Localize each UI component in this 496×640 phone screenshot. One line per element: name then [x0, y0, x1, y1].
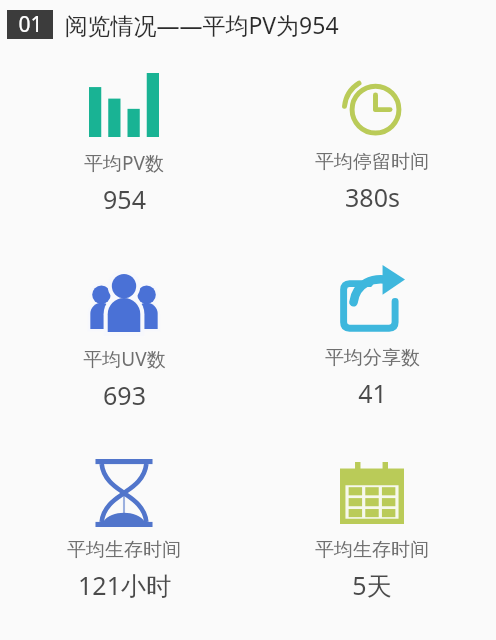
button[interactable]: Average lifetime calendar — [248, 456, 496, 602]
staticText: 平均UV数 — [83, 346, 166, 372]
staticText: 380s — [345, 180, 400, 214]
button[interactable]: Average lifetime hourglass — [0, 456, 248, 602]
staticText: 5天 — [352, 568, 392, 602]
staticText: 01 — [18, 10, 43, 39]
staticText: 954 — [103, 182, 146, 216]
other: Average shares — [335, 264, 409, 338]
other: Average UV people — [87, 264, 161, 338]
staticText: 693 — [103, 378, 146, 412]
other: Average lifetime calendar — [335, 456, 409, 530]
staticText: 平均生存时间 — [315, 538, 429, 562]
staticText: 阅览情况——平均PV为954 — [64, 9, 339, 40]
button[interactable]: Average PV chart — [0, 68, 248, 216]
staticText: 平均PV数 — [84, 150, 164, 176]
button[interactable]: Average shares — [248, 264, 496, 410]
other: Average lifetime hourglass — [87, 456, 161, 530]
staticText: 121小时 — [78, 568, 171, 602]
staticText: 平均分享数 — [325, 346, 420, 370]
staticText: 41 — [358, 376, 387, 410]
other: Average PV chart — [87, 68, 161, 142]
staticText: 平均生存时间 — [67, 538, 181, 562]
button[interactable]: Average UV people — [0, 264, 248, 412]
staticText: 平均停留时间 — [315, 150, 429, 174]
other: Average stay time clock — [335, 68, 409, 142]
button[interactable]: Average stay time clock — [248, 68, 496, 214]
